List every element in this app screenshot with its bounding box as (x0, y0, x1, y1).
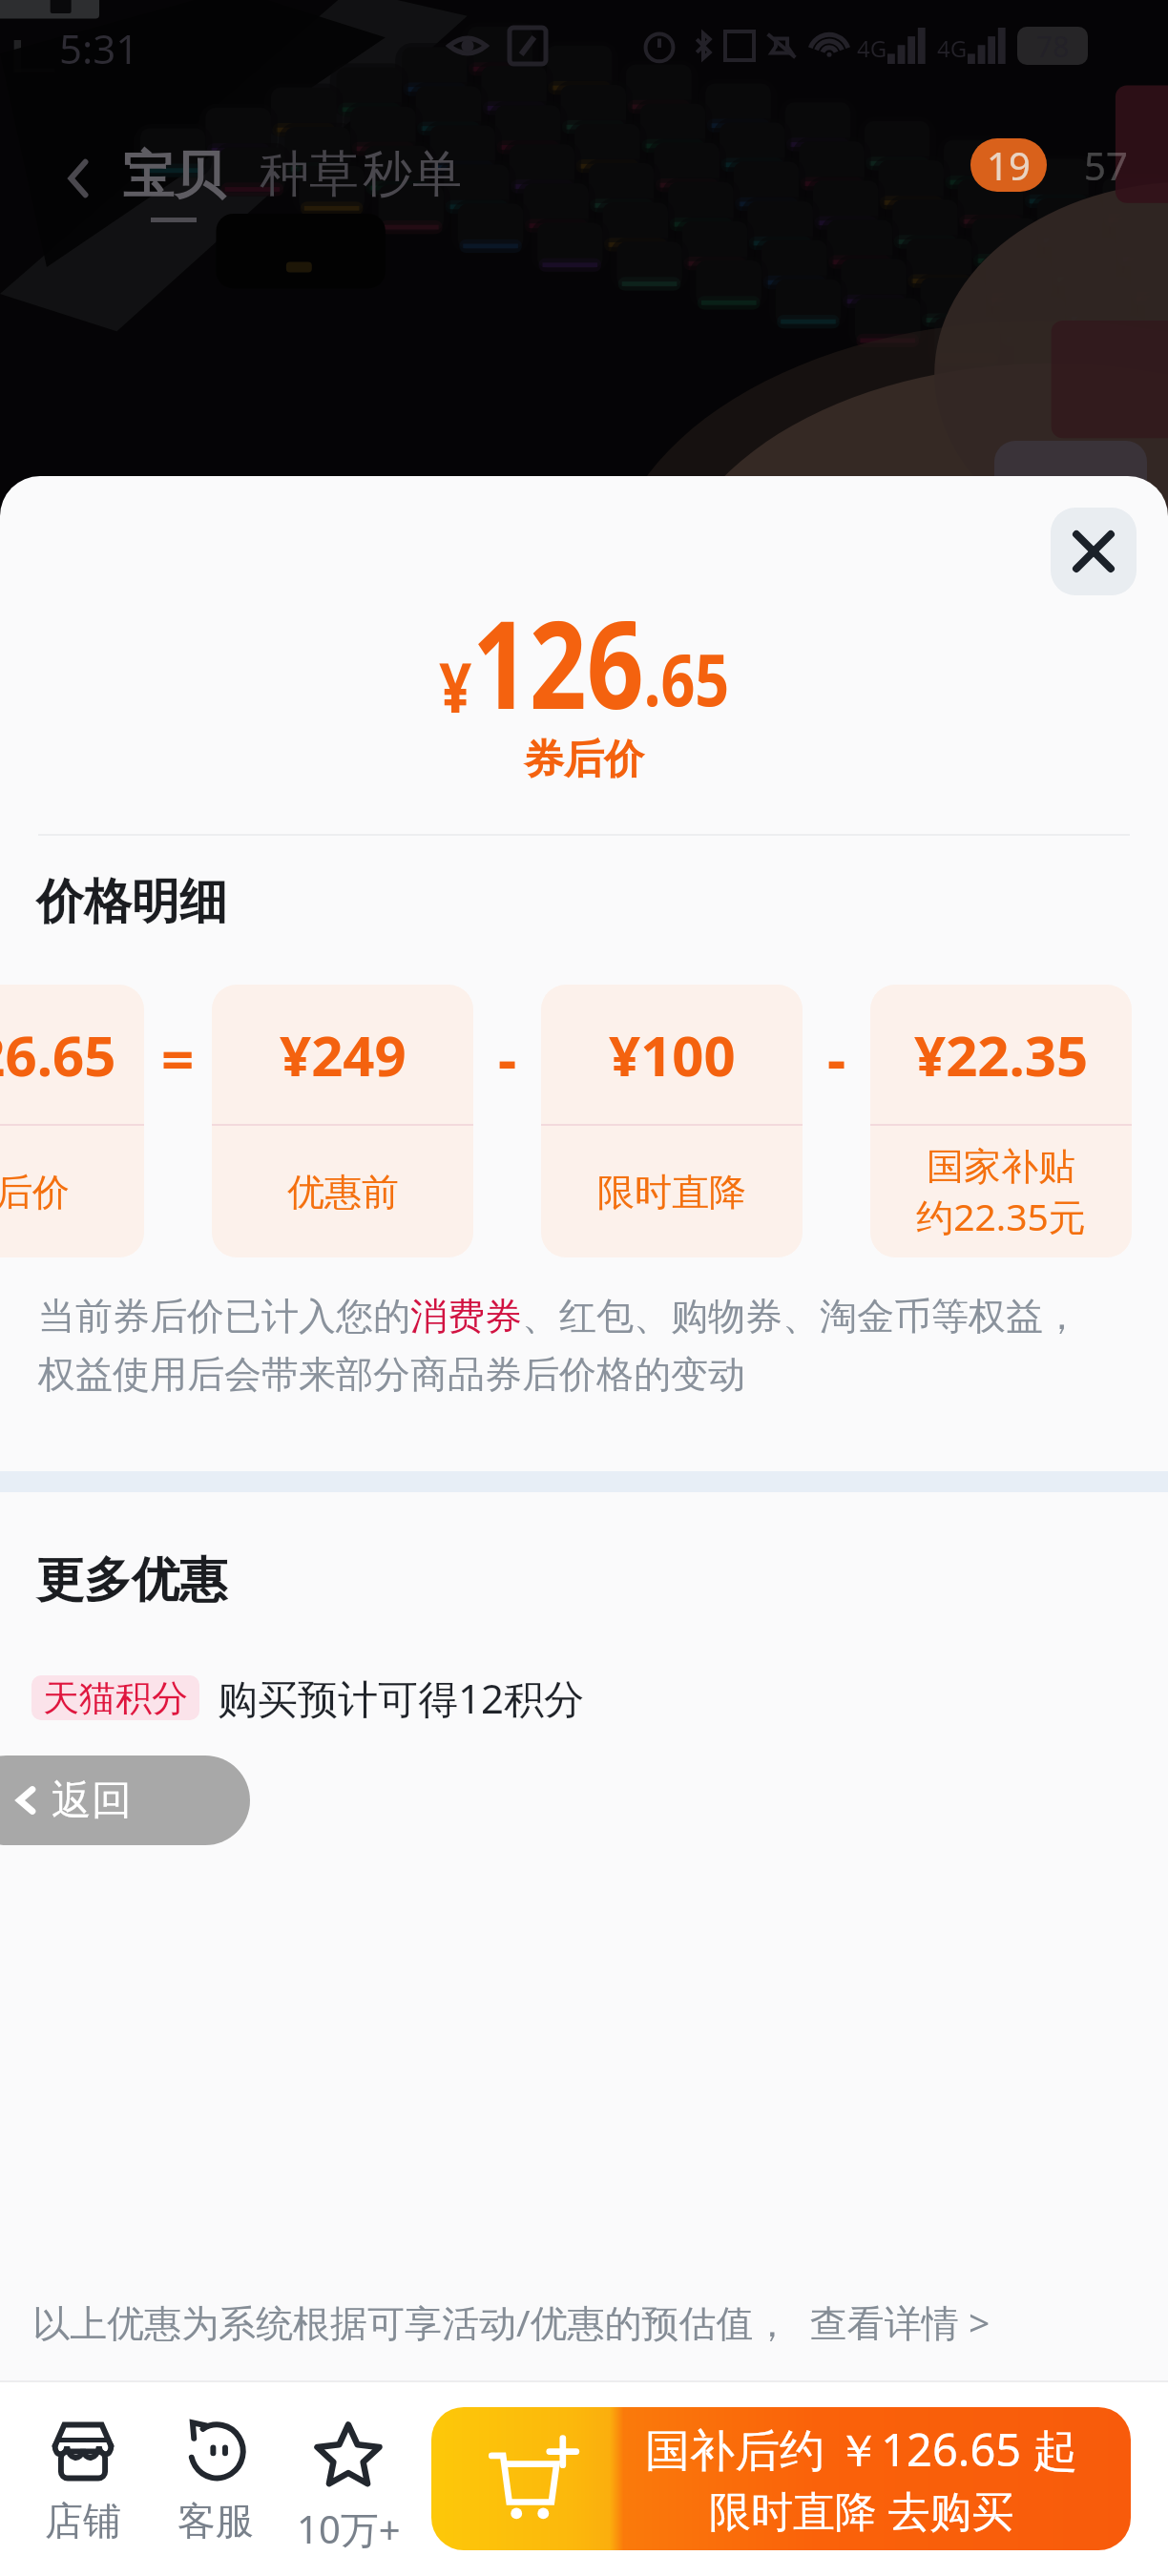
staticText: 宝贝 (122, 143, 225, 208)
staticText: 126 (472, 579, 644, 744)
staticText: 消费券 (410, 1293, 522, 1340)
button[interactable]: 秒单 (363, 143, 462, 206)
staticText: 更多优惠 (36, 1550, 227, 1610)
button[interactable]: ¥249 (212, 985, 473, 1257)
staticText: 57 (1084, 139, 1128, 191)
button[interactable]: Close (1051, 508, 1137, 595)
staticText: 限时直降 去购买 (709, 2482, 1014, 2539)
staticText: 价格明细 (36, 872, 227, 932)
staticText: 国家补贴 约22.35元 (916, 1143, 1086, 1241)
staticText: ¥249 (280, 1017, 407, 1092)
button[interactable]: 19 (970, 138, 1047, 192)
button[interactable]: ¥22.35 (870, 985, 1132, 1257)
staticText: 4G (857, 32, 887, 64)
staticText: 当前券后价已计入您的 (38, 1293, 410, 1340)
staticText: ¥22.35 (914, 1017, 1089, 1092)
staticText: ¥100 (609, 1017, 736, 1092)
button[interactable]: 种草 (260, 143, 359, 206)
button[interactable]: 以上优惠为系统根据可享活动/优惠的预估值， 查看详情 > (32, 2296, 991, 2347)
staticText: 店铺 (45, 2497, 121, 2545)
staticText: 返回 (52, 1776, 132, 1826)
staticText: 优惠前 (287, 1169, 399, 1215)
button[interactable]: 宝贝 (122, 143, 225, 222)
staticText: 券后价 (0, 1169, 70, 1215)
staticText: 19 (987, 139, 1031, 191)
button[interactable]: ¥126.65 (0, 985, 144, 1257)
button[interactable]: 客服 (146, 2409, 285, 2545)
staticText: 4G (937, 32, 968, 64)
button[interactable]: Add to cart (431, 2407, 1131, 2550)
staticText: ¥ (439, 639, 472, 733)
staticText: 购买预计可得12积分 (218, 1671, 585, 1725)
staticText: - (827, 1019, 846, 1097)
staticText: 限时直降 (597, 1169, 746, 1215)
button[interactable]: 10万+ (279, 2409, 418, 2555)
staticText: ¥126.65 (0, 1017, 116, 1092)
staticText: 、红包、购物券、淘金币等权益， (522, 1293, 1080, 1340)
button[interactable]: 返回 (0, 1755, 250, 1845)
staticText: 客服 (177, 2497, 254, 2545)
staticText: = (161, 1019, 195, 1097)
button[interactable]: ¥100 (541, 985, 803, 1257)
button[interactable]: 天猫积分 (31, 1668, 585, 1727)
staticText: 10万+ (297, 2503, 401, 2555)
staticText: 国补后约 ￥126.65 起 (645, 2419, 1078, 2480)
staticText: 权益使用后会带来部分商品券后价格的变动 (38, 1351, 745, 1398)
staticText: - (498, 1019, 517, 1097)
button[interactable]: 店铺 (13, 2409, 153, 2545)
staticText: 天猫积分 (43, 1675, 188, 1720)
other: Add to cart (475, 2431, 578, 2534)
button[interactable]: Back (53, 153, 105, 204)
staticText: 5:31 (59, 21, 139, 75)
staticText: .65 (644, 629, 730, 728)
staticText: 券后价 (524, 735, 644, 785)
